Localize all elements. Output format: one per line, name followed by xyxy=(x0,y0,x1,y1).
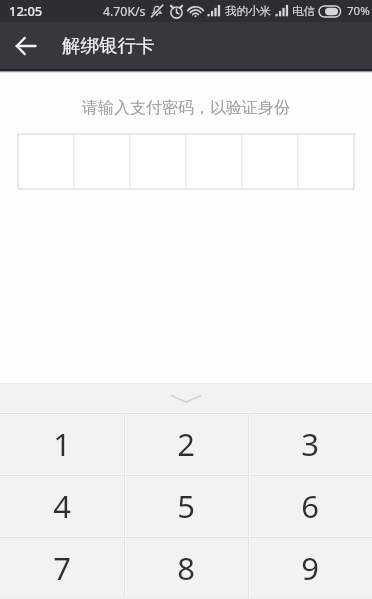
staticText: 解绑银行卡 xyxy=(62,34,155,57)
staticText: 4 xyxy=(53,485,71,527)
staticText: 4.70K/s xyxy=(103,3,146,20)
staticText: 12:05 xyxy=(9,2,43,20)
staticText: 9 xyxy=(301,547,319,589)
staticText: 请输入支付密码，以验证身份 xyxy=(82,98,290,118)
button[interactable] xyxy=(18,134,354,189)
staticText: 1 xyxy=(53,423,71,465)
button[interactable]: 3 xyxy=(248,413,372,475)
button[interactable]: 8 xyxy=(124,537,248,599)
staticText: 电信 xyxy=(292,4,315,18)
button[interactable]: 5 xyxy=(124,475,248,537)
button[interactable]: 1 xyxy=(0,413,124,475)
staticText: 3 xyxy=(301,423,319,465)
staticText: 70% xyxy=(347,3,370,19)
button[interactable]: 9 xyxy=(248,537,372,599)
button[interactable]: Back xyxy=(0,22,51,69)
staticText: 8 xyxy=(177,547,195,589)
staticText: 6 xyxy=(301,485,319,527)
staticText: 我的小米 xyxy=(225,4,271,18)
staticText: 2 xyxy=(177,423,195,465)
button[interactable]: 4 xyxy=(0,475,124,537)
staticText: 5 xyxy=(177,485,195,527)
button[interactable]: 7 xyxy=(0,537,124,599)
button[interactable]: 2 xyxy=(124,413,248,475)
button[interactable]: 6 xyxy=(248,475,372,537)
staticText: 7 xyxy=(53,547,71,589)
